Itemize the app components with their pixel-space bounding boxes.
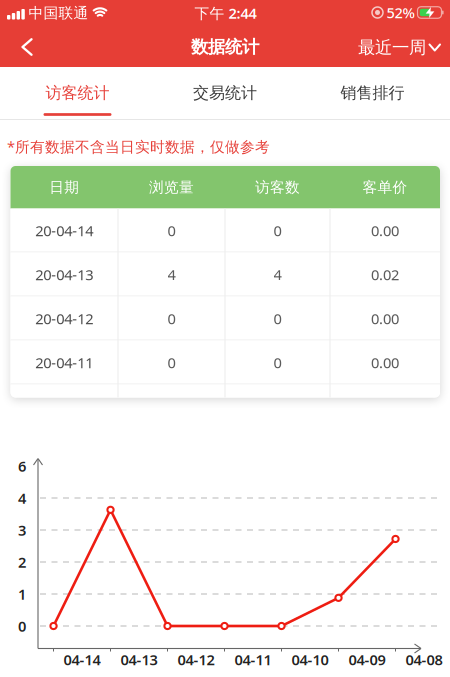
staticText: 04-12 xyxy=(177,650,214,669)
staticText: 1 xyxy=(18,584,26,604)
staticText: 日期 xyxy=(49,178,79,196)
staticText: 52% xyxy=(386,3,414,22)
staticText: 20-04-11 xyxy=(35,353,93,372)
button[interactable]: 最近一周 xyxy=(358,37,440,58)
staticText: 0.02 xyxy=(371,265,399,284)
staticText: 04-11 xyxy=(234,650,271,669)
staticText: 销售排行 xyxy=(340,83,404,103)
staticText: 6 xyxy=(18,456,26,476)
staticText: 访客统计 xyxy=(45,83,109,103)
staticText: 04-08 xyxy=(405,650,442,669)
staticText: 04-13 xyxy=(120,650,157,669)
staticText: 客单价 xyxy=(362,178,407,196)
staticText: 4 xyxy=(273,265,281,284)
staticText: 20-04-14 xyxy=(35,221,93,240)
button[interactable]: 交易统计 xyxy=(151,70,299,116)
staticText: 浏览量 xyxy=(149,178,194,196)
staticText: 2 xyxy=(18,552,26,572)
staticText: 04-10 xyxy=(291,650,328,669)
staticText: 0.00 xyxy=(371,353,399,372)
staticText: *所有数据不含当日实时数据，仅做参考 xyxy=(7,137,270,156)
staticText: 最近一周 xyxy=(358,37,426,58)
staticText: 0 xyxy=(167,309,175,328)
button[interactable]: 访客统计 xyxy=(3,70,151,116)
staticText: 0 xyxy=(273,309,281,328)
staticText: 0 xyxy=(273,353,281,372)
button[interactable]: 销售排行 xyxy=(298,70,446,116)
staticText: 交易统计 xyxy=(193,83,257,103)
staticText: 04-09 xyxy=(348,650,385,669)
staticText: 4 xyxy=(18,488,26,508)
staticText: 0 xyxy=(167,221,175,240)
button[interactable]: Back xyxy=(9,28,45,65)
staticText: 下午 2:44 xyxy=(194,3,256,23)
staticText: 0 xyxy=(18,616,26,636)
staticText: 0 xyxy=(167,353,175,372)
staticText: 0 xyxy=(273,221,281,240)
staticText: 0.00 xyxy=(371,309,399,328)
staticText: 3 xyxy=(18,520,26,540)
staticText: 访客数 xyxy=(255,178,300,196)
staticText: 20-04-13 xyxy=(35,265,93,284)
staticText: 0.00 xyxy=(371,221,399,240)
staticText: 20-04-12 xyxy=(35,309,93,328)
staticText: 04-14 xyxy=(63,650,100,669)
staticText: 4 xyxy=(167,265,175,284)
staticText: 中国联通 xyxy=(28,4,88,22)
staticText: 数据统计 xyxy=(191,36,259,58)
